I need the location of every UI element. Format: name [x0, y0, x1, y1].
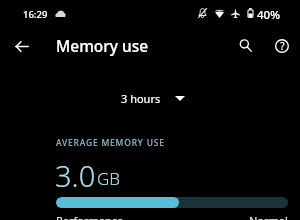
- staticText: Performance: [56, 213, 124, 220]
- staticText: Memory use: [56, 35, 149, 56]
- button[interactable]: 3 hours: [114, 88, 192, 109]
- staticText: 3.0: [55, 156, 96, 195]
- staticText: GB: [97, 167, 121, 190]
- staticText: 3 hours: [121, 91, 161, 106]
- button[interactable]: Search: [229, 29, 262, 62]
- button[interactable]: Navigate up: [5, 29, 39, 63]
- staticText: 40%: [257, 7, 280, 23]
- staticText: 16:29: [23, 8, 48, 21]
- staticText: AVERAGE MEMORY USE: [56, 137, 165, 149]
- staticText: Normal: [249, 213, 288, 220]
- button[interactable]: Help: [265, 29, 298, 62]
- staticText: ?: [280, 39, 285, 53]
